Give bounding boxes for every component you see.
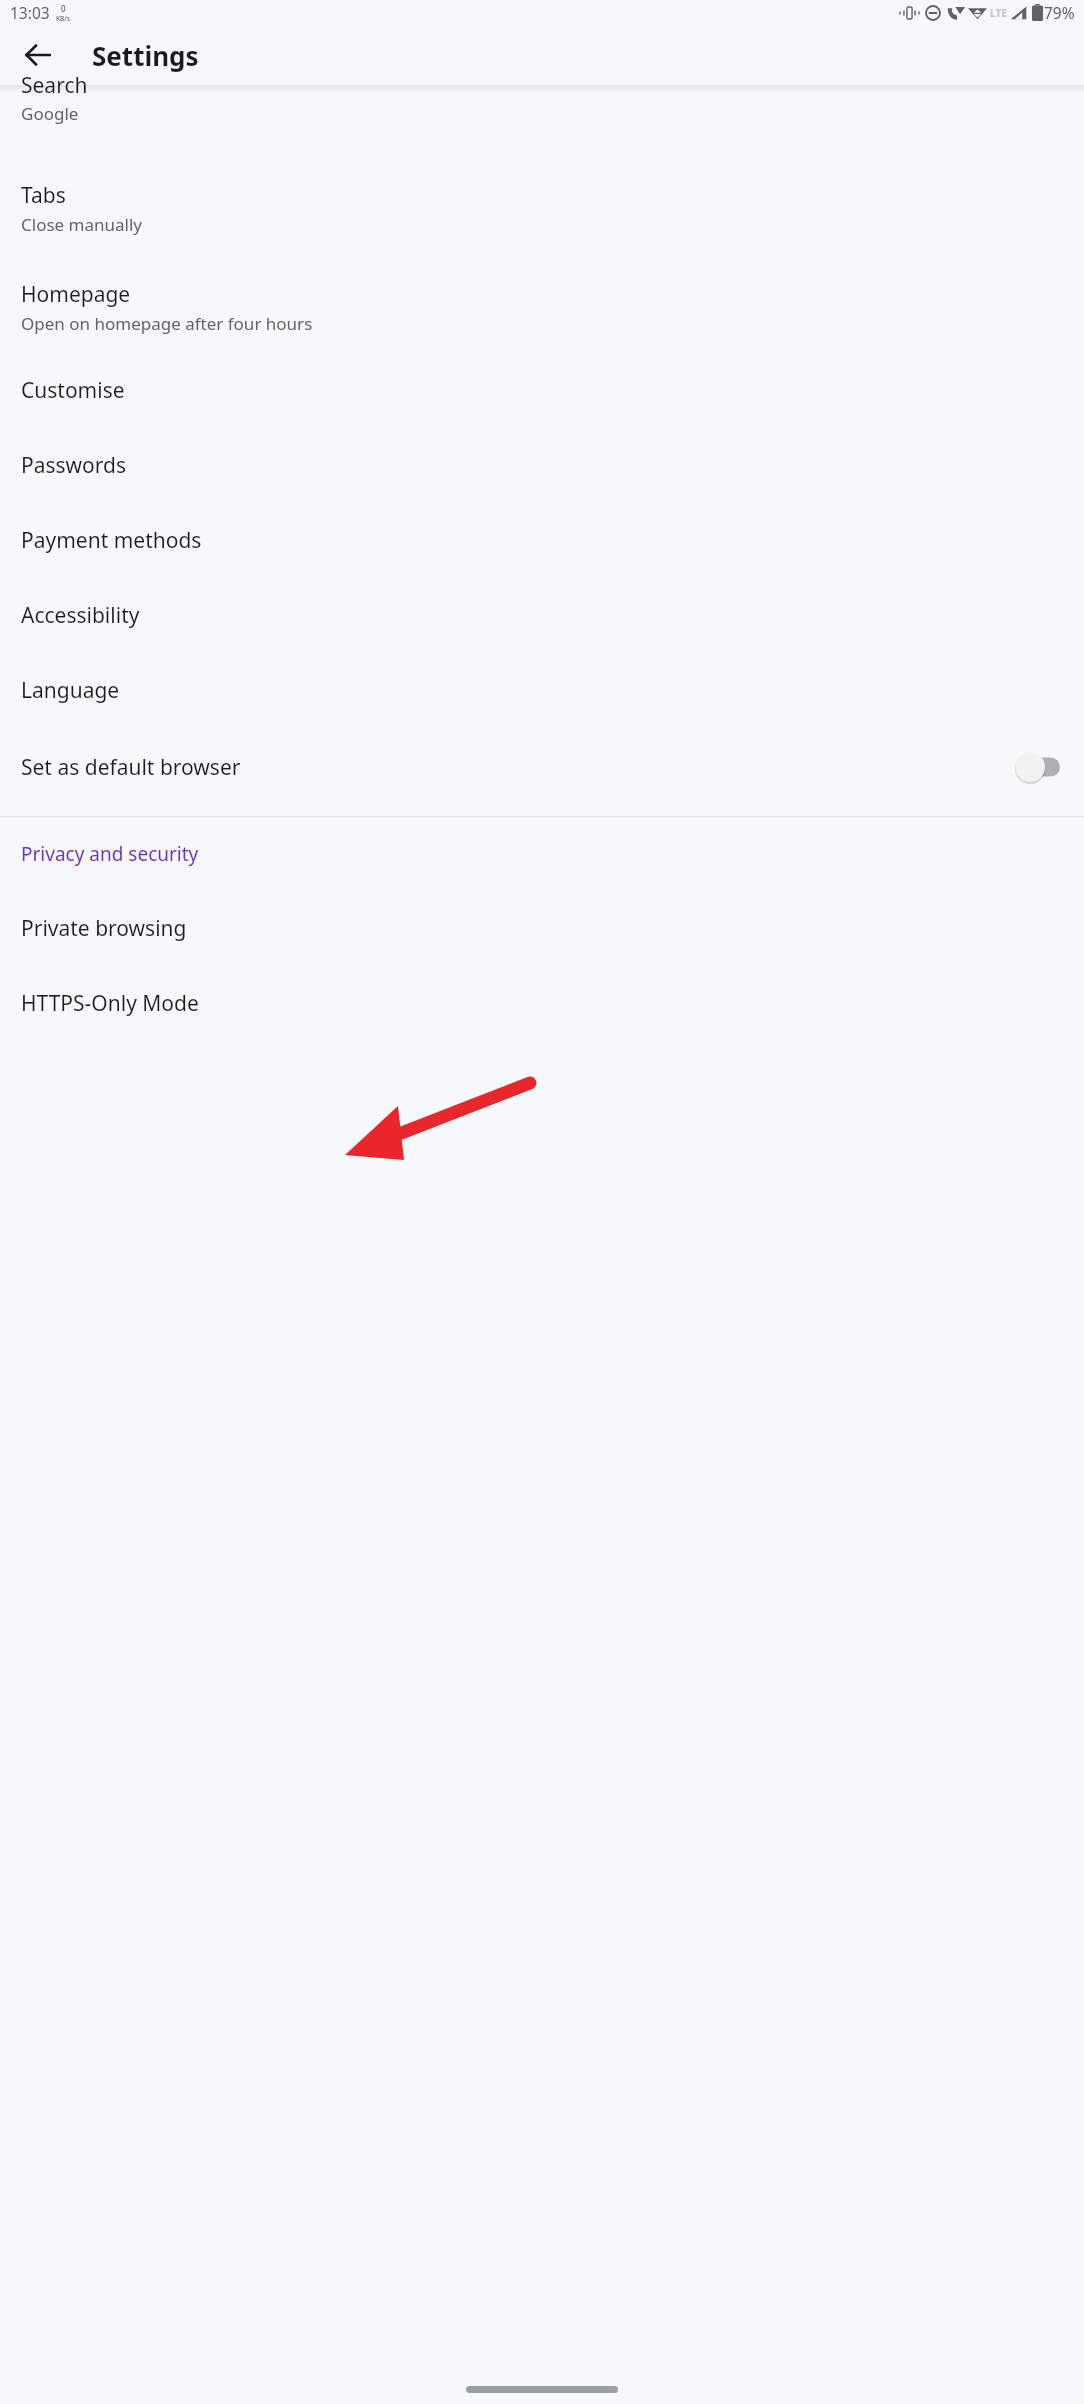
button[interactable]: Passwords — [0, 428, 1084, 503]
staticText: Homepage — [21, 280, 131, 309]
staticText: Google — [21, 102, 79, 125]
button[interactable]: Accessibility — [0, 578, 1084, 653]
staticText: Privacy and security — [21, 841, 199, 867]
staticText: Payment methods — [21, 526, 202, 555]
staticText: Close manually — [21, 213, 142, 236]
staticText: Tabs — [21, 181, 66, 210]
button[interactable]: Search — [0, 85, 1084, 139]
button[interactable]: Back — [14, 31, 62, 79]
staticText: 79% — [1044, 2, 1075, 23]
staticText: KB/s — [56, 14, 71, 23]
button[interactable]: Customise — [0, 353, 1084, 428]
button[interactable]: Privacy and security — [0, 817, 1084, 891]
button[interactable]: Language — [0, 653, 1084, 728]
staticText: Settings — [92, 38, 199, 73]
button[interactable]: Private browsing — [0, 891, 1084, 966]
staticText: Passwords — [21, 451, 127, 480]
staticText: Accessibility — [21, 601, 140, 630]
staticText: Search — [21, 71, 88, 100]
button[interactable]: Set as default browser — [0, 728, 1084, 806]
button[interactable]: Payment methods — [0, 503, 1084, 578]
button[interactable]: Tabs — [0, 155, 1084, 254]
staticText: Open on homepage after four hours — [21, 312, 313, 335]
button[interactable]: HTTPS-Only Mode — [0, 966, 1084, 1041]
staticText: Language — [21, 676, 120, 705]
staticText: LTE — [990, 6, 1007, 20]
staticText: 0 — [61, 3, 66, 14]
staticText: Set as default browser — [21, 753, 1006, 782]
staticText: Private browsing — [21, 914, 187, 943]
staticText: 13:03 — [10, 2, 50, 23]
button[interactable]: Homepage — [0, 254, 1084, 353]
staticText: HTTPS-Only Mode — [21, 989, 199, 1018]
staticText: Customise — [21, 376, 125, 405]
